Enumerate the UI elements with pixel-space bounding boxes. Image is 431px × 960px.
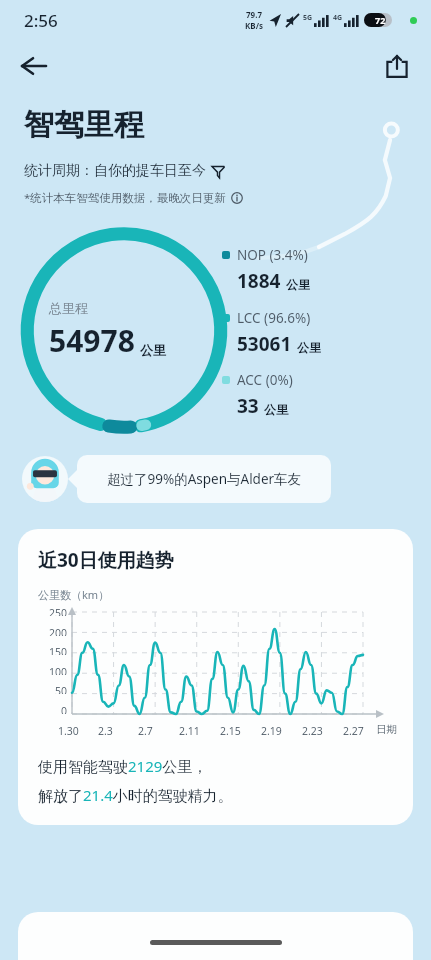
staticText: 72 bbox=[375, 14, 386, 26]
staticText: 公里 bbox=[286, 277, 310, 292]
staticText: 200 bbox=[49, 626, 68, 636]
button[interactable]: Share bbox=[375, 44, 419, 88]
staticText: 2.23 bbox=[302, 724, 323, 738]
staticText: 公里 bbox=[297, 340, 321, 355]
staticText: 2.3 bbox=[98, 724, 113, 738]
staticText: 近30日使用趋势 bbox=[38, 547, 174, 573]
button[interactable]: 近30日使用趋势 bbox=[18, 529, 413, 825]
button[interactable]: NOP (3.4%) bbox=[222, 245, 310, 295]
staticText: 智驾里程 bbox=[24, 106, 144, 144]
staticText: KB/s bbox=[245, 20, 263, 31]
button[interactable]: ACC (0%) bbox=[222, 370, 293, 420]
staticText: 100 bbox=[49, 665, 68, 675]
staticText: 公里数（km） bbox=[38, 587, 110, 602]
staticText: 5G bbox=[303, 13, 313, 23]
staticText: 1884 bbox=[237, 268, 281, 294]
staticText: 总里程 bbox=[49, 300, 88, 316]
staticText: 50 bbox=[55, 684, 68, 694]
staticText: 150 bbox=[49, 645, 68, 655]
staticText: 使用智能驾驶2129公里， bbox=[38, 756, 208, 776]
staticText: 日期 bbox=[376, 723, 397, 736]
staticText: 1.30 bbox=[58, 724, 79, 738]
staticText: ACC (0%) bbox=[237, 371, 293, 389]
staticText: 250 bbox=[49, 606, 68, 616]
button[interactable]: LCC (96.6%) bbox=[222, 308, 321, 358]
staticText: 统计周期：自你的提车日至今 bbox=[24, 162, 206, 180]
staticText: 2:56 bbox=[24, 9, 58, 32]
button[interactable]: 统计周期：自你的提车日至今 bbox=[24, 162, 225, 180]
staticText: 0 bbox=[61, 704, 68, 714]
staticText: 2.19 bbox=[261, 724, 282, 738]
staticText: 53061 bbox=[237, 331, 292, 357]
staticText: 2.15 bbox=[220, 724, 241, 738]
staticText: NOP (3.4%) bbox=[237, 246, 308, 264]
staticText: 33 bbox=[237, 393, 259, 419]
staticText: LCC (96.6%) bbox=[237, 309, 311, 327]
staticText: 2.7 bbox=[138, 724, 153, 738]
staticText: 超过了99%的Aspen与Alder车友 bbox=[107, 470, 302, 488]
staticText: 4G bbox=[333, 13, 343, 23]
button[interactable]: 超过了99%的Aspen与Alder车友 bbox=[77, 455, 331, 503]
staticText: 公里 bbox=[264, 402, 288, 417]
staticText: 2.27 bbox=[343, 724, 364, 738]
staticText: 解放了21.4小时的驾驶精力。 bbox=[38, 785, 233, 805]
staticText: 79.7 bbox=[246, 9, 262, 20]
button[interactable]: Back bbox=[10, 43, 56, 89]
staticText: 2.11 bbox=[179, 724, 200, 738]
staticText: *统计本车智驾使用数据，最晚次日更新 bbox=[24, 190, 226, 206]
staticText: 公里 bbox=[140, 342, 166, 358]
staticText: 54978 bbox=[49, 320, 135, 361]
